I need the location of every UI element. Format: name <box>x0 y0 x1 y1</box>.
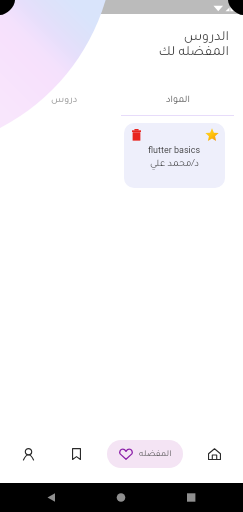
other: Delete <box>132 129 141 141</box>
staticText: دروس <box>51 96 78 106</box>
button[interactable]: Home <box>196 438 232 470</box>
staticText: flutter basics <box>148 145 201 156</box>
staticText: الدروس <box>183 31 229 45</box>
button[interactable]: المفضله <box>107 440 183 468</box>
button[interactable]: دروس <box>8 92 121 116</box>
staticText: المواد <box>166 96 190 106</box>
other: Favorite <box>205 128 219 142</box>
staticText: المفضله لك <box>158 46 229 60</box>
button[interactable]: Profile <box>10 438 46 470</box>
button[interactable]: Bookmarks <box>58 438 94 470</box>
button[interactable]: Delete <box>124 123 225 188</box>
staticText: د/محمد علي <box>150 160 200 170</box>
staticText: المفضله <box>139 450 172 459</box>
button[interactable]: المواد <box>121 92 234 116</box>
staticText: 11:02 <box>4 3 24 12</box>
